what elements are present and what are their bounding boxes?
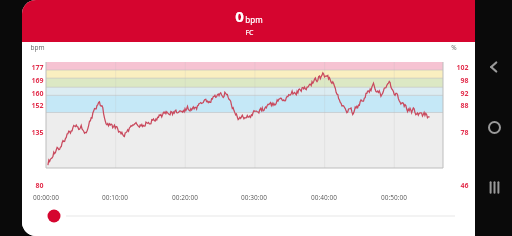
staticText: 169 — [31, 76, 44, 86]
button[interactable]: Recent apps — [479, 172, 509, 202]
button[interactable]: Heart rate series legend — [22, 204, 475, 236]
staticText: 135 — [31, 128, 44, 138]
staticText: 80 — [35, 181, 44, 191]
staticText: 00:40:00 — [311, 193, 337, 202]
staticText: 98 — [460, 76, 469, 86]
button[interactable]: Back — [479, 52, 509, 82]
staticText: 00:00:00 — [33, 193, 59, 202]
staticText: bpm — [245, 14, 263, 25]
staticText: 88 — [460, 101, 469, 111]
staticText: bpm — [30, 43, 45, 52]
staticText: % — [451, 43, 457, 52]
button[interactable]: Home — [479, 112, 509, 142]
staticText: 00:50:00 — [381, 193, 407, 202]
staticText: FC — [245, 28, 254, 38]
staticText: 00:10:00 — [102, 193, 128, 202]
staticText: 00:30:00 — [241, 193, 267, 202]
staticText: 102 — [456, 63, 469, 73]
staticText: 160 — [31, 89, 44, 99]
button[interactable]: 0 — [22, 0, 475, 42]
staticText: 177 — [31, 63, 44, 73]
staticText: 78 — [460, 128, 469, 138]
staticText: 0 — [235, 6, 244, 26]
staticText: 00:20:00 — [172, 193, 198, 202]
staticText: 46 — [460, 181, 469, 191]
staticText: 92 — [460, 89, 469, 99]
staticText: 152 — [31, 101, 44, 111]
